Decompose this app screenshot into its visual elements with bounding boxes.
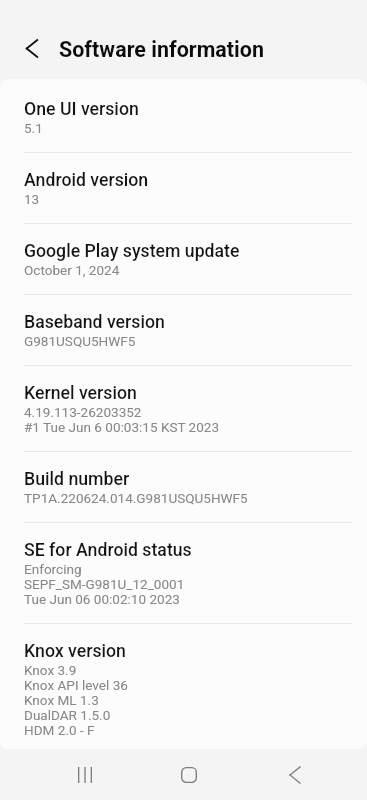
staticText: 13 [24, 192, 40, 207]
staticText: 4.19.113-26203352 [24, 405, 142, 420]
staticText: Android version [24, 169, 149, 190]
staticText: Baseband version [24, 311, 165, 332]
button[interactable]: Build number [0, 452, 367, 523]
staticText: Google Play system update [24, 240, 240, 261]
staticText: 5.1 [24, 121, 43, 136]
staticText: Knox version [24, 640, 126, 661]
button[interactable]: Baseband version [0, 295, 367, 366]
button[interactable]: Recent apps [50, 749, 119, 800]
staticText: SE for Android status [24, 539, 192, 560]
staticText: Kernel version [24, 382, 137, 403]
button[interactable]: One UI version [0, 82, 367, 153]
button[interactable]: Home [154, 749, 223, 800]
staticText: Software information [59, 37, 264, 62]
staticText: HDM 2.0 - F [24, 723, 95, 738]
staticText: Enforcing [24, 562, 82, 577]
button[interactable]: Navigate up [14, 32, 50, 64]
staticText: One UI version [24, 98, 139, 119]
staticText: DualDAR 1.5.0 [24, 708, 111, 723]
button[interactable]: SE for Android status [0, 523, 367, 624]
staticText: Tue Jun 06 00:02:10 2023 [24, 592, 180, 607]
staticText: Build number [24, 468, 130, 489]
button[interactable]: Kernel version [0, 366, 367, 452]
staticText: Knox API level 36 [24, 678, 128, 693]
staticText: Knox 3.9 [24, 663, 77, 678]
button[interactable]: Android version [0, 153, 367, 224]
staticText: SEPF_SM-G981U_12_0001 [24, 577, 185, 592]
staticText: #1 Tue Jun 6 00:03:15 KST 2023 [24, 420, 220, 435]
button[interactable]: Knox version [0, 624, 367, 742]
button[interactable]: Google Play system update [0, 224, 367, 295]
staticText: October 1, 2024 [24, 263, 120, 278]
button[interactable]: Back [260, 749, 329, 800]
staticText: Knox ML 1.3 [24, 693, 99, 708]
staticText: G981USQU5HWF5 [24, 334, 136, 349]
staticText: TP1A.220624.014.G981USQU5HWF5 [24, 491, 248, 506]
